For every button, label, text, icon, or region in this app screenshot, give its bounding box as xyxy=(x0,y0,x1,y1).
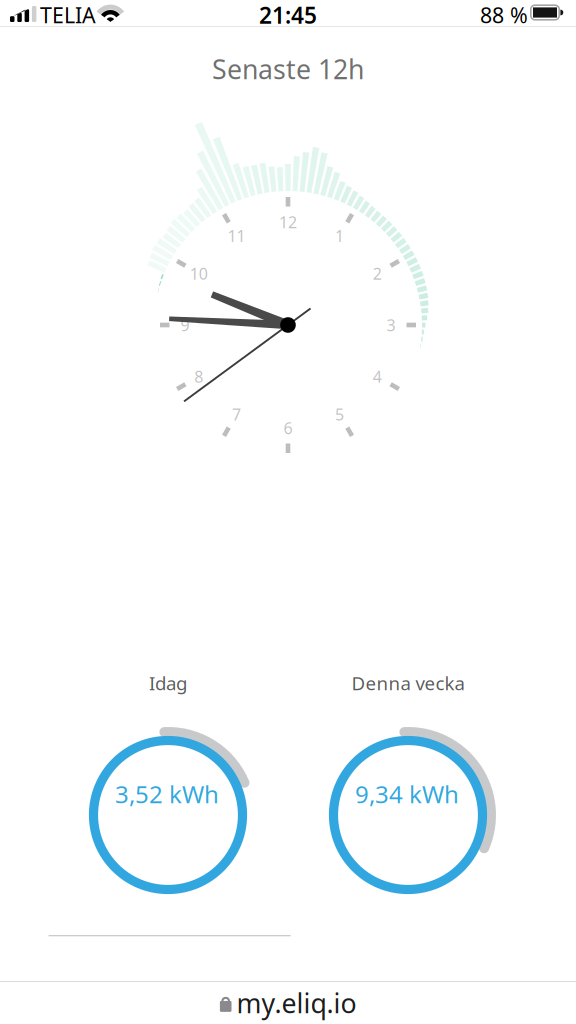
staticText: Denna vecka xyxy=(351,671,464,695)
staticText: 9,34 kWh xyxy=(355,778,459,810)
staticText: 4 xyxy=(373,366,382,387)
staticText: 9 xyxy=(180,314,189,336)
staticText: my.eliq.io xyxy=(236,985,356,1021)
staticText: 8 xyxy=(194,366,203,387)
staticText: 11 xyxy=(227,225,245,246)
staticText: 21:45 xyxy=(259,0,317,30)
staticText: 1 xyxy=(335,225,344,246)
staticText: 5 xyxy=(335,404,344,425)
staticText: 7 xyxy=(232,404,241,425)
staticText: 12 xyxy=(279,211,297,233)
staticText: 2 xyxy=(373,263,382,284)
staticText: 88 % xyxy=(480,1,528,29)
button[interactable]: my.eliq.io xyxy=(0,982,576,1024)
staticText: 6 xyxy=(283,417,292,439)
staticText: 10 xyxy=(190,263,208,284)
staticText: Idag xyxy=(149,671,187,695)
staticText: 3,52 kWh xyxy=(115,778,219,810)
staticText: 3 xyxy=(386,314,395,336)
staticText: TELIA xyxy=(40,1,96,29)
staticText: Senaste 12h xyxy=(212,51,364,87)
